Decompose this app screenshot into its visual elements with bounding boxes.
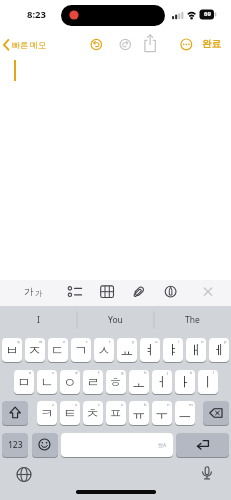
staticText: 69 — [204, 10, 211, 18]
button[interactable] — [89, 37, 104, 52]
staticText: n — [167, 402, 170, 408]
staticText: v — [121, 402, 124, 408]
staticText: y — [132, 339, 135, 345]
staticText: ㄴ — [40, 374, 54, 391]
button[interactable]: ㅕ — [140, 338, 160, 362]
button[interactable] — [22, 282, 50, 303]
staticText: z — [52, 402, 54, 408]
staticText: r — [86, 339, 88, 345]
button[interactable] — [128, 282, 150, 302]
button[interactable]: ㄷ — [48, 338, 68, 362]
staticText: 가 — [24, 286, 34, 298]
staticText: 빠른 메모 — [12, 39, 47, 50]
button[interactable] — [142, 36, 158, 53]
staticText: w — [39, 339, 43, 345]
staticText: ㅅ — [97, 342, 111, 359]
button[interactable]: ㅡ — [175, 401, 195, 425]
staticText: 한A — [158, 442, 167, 449]
button[interactable]: ㅑ — [163, 338, 183, 362]
staticText: ㄷ — [51, 342, 65, 359]
staticText: e — [63, 339, 66, 345]
staticText: ㅊ — [86, 405, 100, 422]
staticText: You — [108, 314, 123, 326]
staticText: ㅑ — [166, 342, 180, 359]
button[interactable] — [118, 37, 133, 52]
staticText: b — [144, 402, 147, 408]
staticText: p — [224, 339, 227, 345]
button[interactable] — [61, 433, 173, 457]
staticText: ㅔ — [212, 342, 226, 359]
button[interactable]: ㅗ — [129, 370, 149, 394]
button[interactable]: ㅠ — [129, 401, 149, 425]
staticText: ㅌ — [63, 405, 77, 422]
button[interactable]: ㅔ — [209, 338, 229, 362]
button[interactable]: ㅅ — [94, 338, 114, 362]
button[interactable]: ㅁ — [14, 370, 34, 394]
button[interactable]: ㅓ — [152, 370, 172, 394]
staticText: ㅎ — [109, 374, 123, 391]
button[interactable] — [64, 282, 86, 302]
staticText: The — [185, 314, 200, 326]
button[interactable]: ㅎ — [106, 370, 126, 394]
button[interactable]: 123 — [2, 433, 28, 457]
button[interactable] — [32, 433, 58, 457]
staticText: i — [178, 339, 180, 345]
staticText: ㅁ — [17, 374, 31, 391]
button[interactable]: ㅜ — [152, 401, 172, 425]
staticText: o — [201, 339, 204, 345]
staticText: ㅡ — [178, 405, 192, 422]
button[interactable]: 완료 — [195, 36, 227, 52]
button[interactable] — [197, 464, 217, 484]
button[interactable]: ㅏ — [175, 370, 195, 394]
staticText: 가 — [35, 289, 43, 298]
staticText: q — [17, 339, 20, 345]
staticText: ㅍ — [109, 405, 123, 422]
button[interactable]: ㅌ — [60, 401, 80, 425]
staticText: c — [98, 402, 101, 408]
button[interactable]: ㄴ — [37, 370, 57, 394]
button[interactable]: ㅂ — [2, 338, 22, 362]
staticText: 123 — [8, 439, 23, 451]
staticText: ㄱ — [74, 342, 88, 359]
button[interactable] — [14, 465, 34, 485]
button[interactable]: ㅊ — [83, 401, 103, 425]
button[interactable]: You — [77, 306, 154, 334]
button[interactable]: ㅣ — [198, 370, 218, 394]
staticText: ㅐ — [189, 342, 203, 359]
staticText: t — [109, 339, 111, 345]
button[interactable] — [197, 282, 219, 302]
button[interactable] — [176, 433, 229, 457]
button[interactable]: The — [154, 306, 231, 334]
staticText: ㅗ — [132, 374, 146, 391]
staticText: f — [98, 370, 100, 376]
staticText: d — [75, 370, 78, 376]
staticText: h — [144, 370, 147, 376]
button[interactable] — [2, 37, 54, 52]
staticText: j — [167, 370, 169, 376]
button[interactable]: ㅍ — [106, 401, 126, 425]
button[interactable] — [179, 37, 194, 52]
staticText: 8:23 — [27, 8, 46, 21]
button[interactable]: ㅈ — [25, 338, 45, 362]
staticText: ㅓ — [155, 374, 169, 391]
staticText: s — [52, 370, 55, 376]
staticText: I — [37, 314, 40, 326]
button[interactable] — [160, 282, 182, 302]
button[interactable] — [2, 401, 28, 425]
staticText: m — [189, 402, 193, 408]
button[interactable]: ㄱ — [71, 338, 91, 362]
staticText: ㅇ — [63, 374, 77, 391]
staticText: ㅛ — [120, 342, 134, 359]
staticText: ㅕ — [143, 342, 157, 359]
button[interactable] — [203, 401, 229, 425]
button[interactable] — [96, 282, 118, 302]
button[interactable]: ㅋ — [37, 401, 57, 425]
button[interactable]: ㄹ — [83, 370, 103, 394]
button[interactable]: ㅛ — [117, 338, 137, 362]
button[interactable]: ㅐ — [186, 338, 206, 362]
staticText: ㄹ — [86, 374, 100, 391]
staticText: ㅣ — [201, 374, 215, 391]
button[interactable]: ㅇ — [60, 370, 80, 394]
button[interactable]: I — [0, 306, 77, 334]
staticText: u — [155, 339, 158, 345]
